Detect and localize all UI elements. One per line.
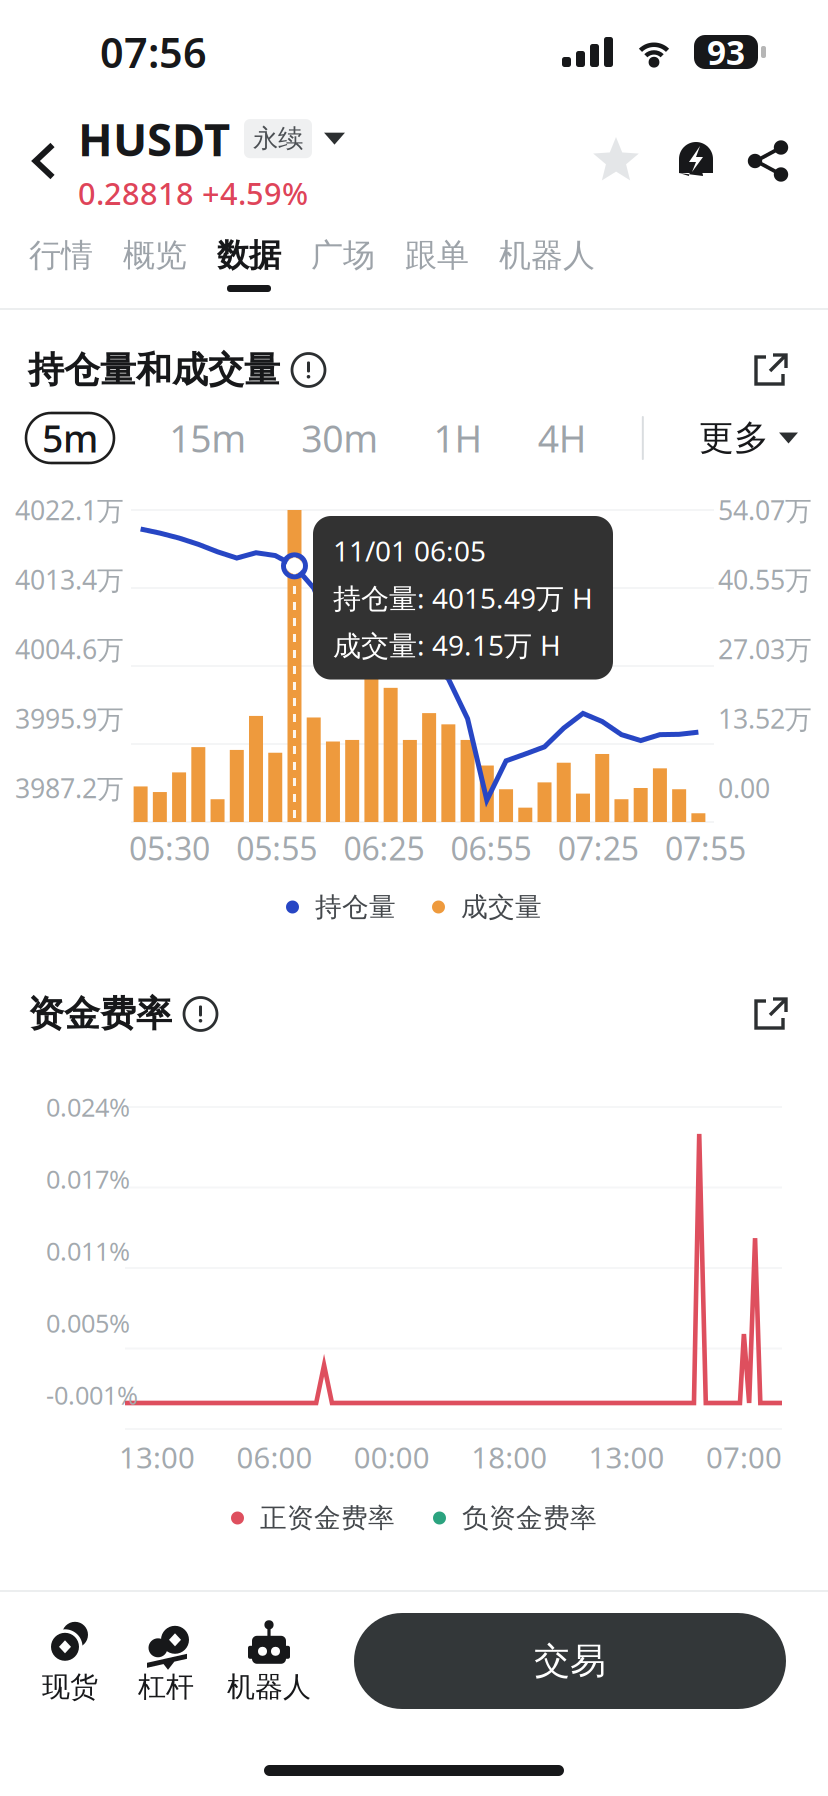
staticText: 07:00 xyxy=(706,1437,782,1476)
staticText: 07:55 xyxy=(665,827,746,869)
staticText: 0.017% xyxy=(46,1162,130,1196)
staticText: 5m xyxy=(42,413,98,463)
staticText: 30m xyxy=(301,413,378,463)
staticText: 0.005% xyxy=(46,1306,130,1340)
staticText: 4004.6万 xyxy=(15,631,124,667)
staticText: 4H xyxy=(538,413,587,463)
staticText: 93 xyxy=(707,30,745,74)
staticText: 4022.1万 xyxy=(15,492,124,528)
button[interactable]: Open full chart xyxy=(742,985,800,1043)
staticText: 机器人 xyxy=(227,1670,311,1704)
button[interactable]: 机器人 xyxy=(214,1603,324,1719)
button[interactable]: 杠杆 xyxy=(118,1603,214,1719)
staticText: 跟单 xyxy=(405,236,469,275)
staticText: 05:30 xyxy=(129,827,210,869)
button[interactable]: Back xyxy=(10,113,78,209)
button[interactable]: 更多 xyxy=(699,409,798,467)
button[interactable]: 跟单 xyxy=(390,218,484,308)
staticText: 54.07万 xyxy=(718,492,812,528)
staticText: 数据 xyxy=(217,236,281,275)
staticText: 4013.4万 xyxy=(15,562,124,597)
staticText: 广场 xyxy=(311,236,375,275)
staticText: 0.024% xyxy=(46,1090,130,1124)
staticText: 成交量: 49.15万 H xyxy=(333,626,561,664)
staticText: 成交量 xyxy=(461,891,542,923)
button[interactable]: 广场 xyxy=(296,218,390,308)
staticText: 0.28818 +4.59% xyxy=(78,173,308,213)
button[interactable]: Add to favorites xyxy=(576,124,656,198)
staticText: 07:56 xyxy=(100,25,207,79)
staticText: 永续 xyxy=(253,123,303,154)
staticText: 13.52万 xyxy=(718,701,812,736)
staticText: 0.00 xyxy=(718,770,770,806)
staticText: 杠杆 xyxy=(138,1670,194,1704)
button[interactable]: 15m xyxy=(169,413,246,463)
button[interactable]: Open full chart xyxy=(742,341,800,399)
staticText: 00:00 xyxy=(354,1437,430,1476)
staticText: 现货 xyxy=(42,1670,98,1704)
button[interactable]: 30m xyxy=(301,413,378,463)
staticText: 0.011% xyxy=(46,1234,130,1268)
staticText: 05:55 xyxy=(236,827,317,869)
button[interactable]: 机器人 xyxy=(484,218,610,308)
staticText: 持仓量和成交量 xyxy=(28,348,280,392)
staticText: 07:25 xyxy=(558,827,639,869)
button[interactable]: Price alert xyxy=(656,124,736,198)
staticText: 持仓量 xyxy=(315,891,396,923)
button[interactable]: 行情 xyxy=(14,218,108,308)
staticText: 1H xyxy=(433,413,482,463)
staticText: 06:00 xyxy=(236,1437,312,1476)
button[interactable]: 4H xyxy=(538,413,587,463)
staticText: 正资金费率 xyxy=(260,1502,395,1534)
staticText: 概览 xyxy=(123,236,187,275)
staticText: 更多 xyxy=(699,417,769,459)
staticText: 3987.2万 xyxy=(15,770,124,806)
button[interactable]: 数据 xyxy=(202,218,296,308)
button[interactable]: 5m xyxy=(26,413,114,463)
staticText: 13:00 xyxy=(589,1437,665,1476)
staticText: 负资金费率 xyxy=(462,1502,597,1534)
staticText: 机器人 xyxy=(499,236,595,275)
staticText: 15m xyxy=(169,413,246,463)
staticText: 3995.9万 xyxy=(15,701,124,736)
button[interactable]: 现货 xyxy=(22,1603,118,1719)
staticText: 27.03万 xyxy=(718,631,812,667)
staticText: 交易 xyxy=(534,1639,606,1683)
staticText: 06:25 xyxy=(343,827,424,869)
button[interactable]: 概览 xyxy=(108,218,202,308)
button[interactable]: 交易 xyxy=(354,1613,786,1709)
staticText: -0.001% xyxy=(46,1378,138,1412)
staticText: 40.55万 xyxy=(718,562,812,597)
button[interactable]: Share xyxy=(736,124,802,198)
staticText: 持仓量: 4015.49万 H xyxy=(333,579,593,616)
staticText: 资金费率 xyxy=(28,992,172,1036)
staticText: 13:00 xyxy=(119,1437,195,1476)
staticText: 行情 xyxy=(29,236,93,275)
staticText: HUSDT xyxy=(78,108,230,169)
staticText: 06:55 xyxy=(451,827,532,869)
button[interactable]: 1H xyxy=(433,413,482,463)
staticText: 11/01 06:05 xyxy=(333,532,486,569)
staticText: 18:00 xyxy=(471,1437,547,1476)
